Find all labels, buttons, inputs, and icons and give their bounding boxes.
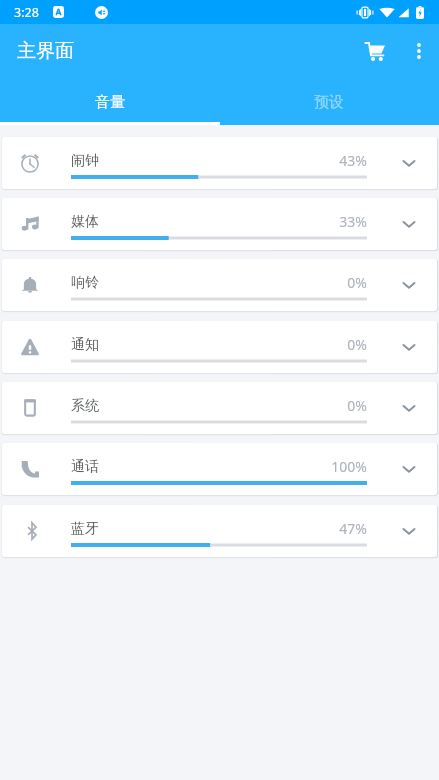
button[interactable]: 响铃 — [2, 259, 437, 311]
button[interactable]: 音量 — [0, 77, 219, 125]
button[interactable]: Cart — [351, 27, 399, 75]
staticText: 蓝牙 — [71, 520, 99, 538]
staticText: 47% — [339, 519, 367, 538]
staticText: 媒体 — [71, 213, 99, 231]
button[interactable]: Expand 蓝牙 — [389, 511, 429, 551]
button[interactable]: 预设 — [219, 77, 439, 125]
staticText: 0% — [347, 273, 367, 292]
button[interactable]: Expand 闹钟 — [389, 143, 429, 183]
staticText: 0% — [347, 396, 367, 415]
button[interactable]: 蓝牙 — [2, 505, 437, 557]
staticText: 33% — [339, 212, 367, 231]
button[interactable]: Expand 通知 — [389, 327, 429, 367]
staticText: 预设 — [314, 93, 344, 112]
button[interactable]: 通知 — [2, 321, 437, 373]
button[interactable]: Expand 系统 — [389, 388, 429, 428]
button[interactable]: Expand 响铃 — [389, 265, 429, 305]
button[interactable]: 系统 — [2, 382, 437, 434]
staticText: 0% — [347, 335, 367, 354]
staticText: 通知 — [71, 336, 99, 354]
button[interactable]: Expand 媒体 — [389, 204, 429, 244]
button[interactable]: 通话 — [2, 443, 437, 495]
button[interactable]: 媒体 — [2, 198, 437, 250]
staticText: 系统 — [71, 397, 99, 415]
button[interactable]: More options — [399, 31, 439, 71]
staticText: 闹钟 — [71, 152, 99, 170]
staticText: 43% — [339, 151, 367, 170]
staticText: 100% — [331, 457, 367, 476]
staticText: 3:28 — [14, 4, 39, 21]
staticText: 通话 — [71, 458, 99, 476]
button[interactable]: 闹钟 — [2, 137, 437, 189]
staticText: 主界面 — [17, 39, 74, 63]
button[interactable]: Expand 通话 — [389, 449, 429, 489]
staticText: 响铃 — [71, 274, 99, 292]
staticText: 音量 — [95, 93, 125, 112]
